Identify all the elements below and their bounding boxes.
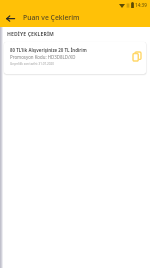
staticText: Puan ve Çeklerim: [23, 13, 80, 22]
staticText: 14:39: [135, 2, 147, 8]
staticText: Geçerlilik son tarihi: 31.07.2020: [10, 62, 54, 66]
staticText: 80 TL'lik Alışverişinize 20 TL İndirim: [10, 47, 87, 53]
staticText: Promosyon Kodu: HD3D8LD/XD: [10, 54, 76, 60]
button[interactable]: Copy promo code: [132, 51, 141, 61]
staticText: HEDİYE ÇEKLERİM: [7, 31, 54, 38]
button[interactable]: Back: [0, 10, 21, 27]
button[interactable]: 80 TL'lik Alışverişinize 20 TL İndirim: [4, 42, 146, 74]
